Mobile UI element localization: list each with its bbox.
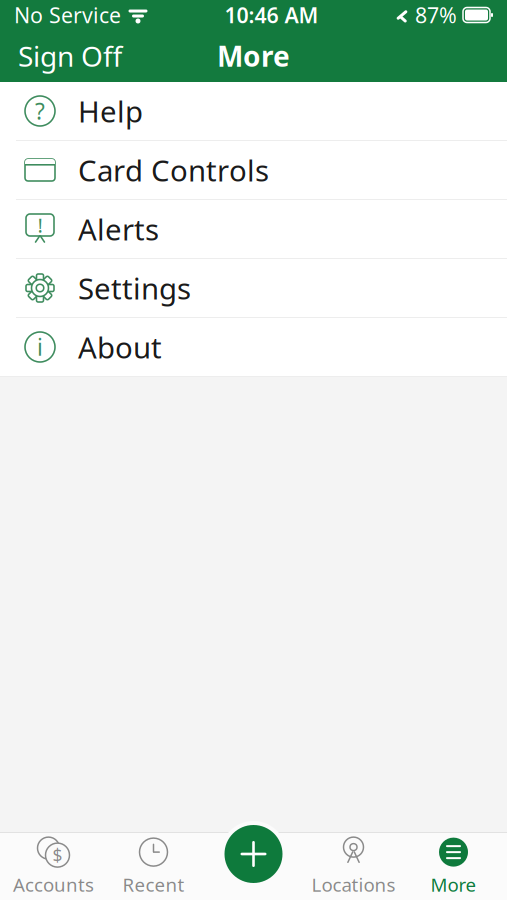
staticText: About	[78, 327, 162, 366]
button[interactable]: More	[403, 833, 503, 899]
button[interactable]: Sign Off	[0, 32, 140, 80]
staticText: Sign Off	[18, 37, 122, 75]
button[interactable]: $	[3, 833, 103, 899]
staticText: Card Controls	[78, 150, 269, 189]
staticText: 87%	[415, 1, 457, 29]
staticText: More	[430, 872, 476, 897]
button[interactable]: Locations	[303, 833, 403, 899]
staticText: Recent	[122, 872, 184, 897]
button[interactable]: Settings	[0, 259, 507, 318]
staticText: Locations	[311, 872, 395, 897]
button[interactable]: !	[0, 200, 507, 259]
staticText: No Service	[14, 1, 121, 29]
staticText: Alerts	[78, 209, 159, 248]
button[interactable]: Card Controls	[0, 141, 507, 200]
staticText: Help	[78, 91, 143, 130]
staticText: i	[37, 332, 43, 362]
button[interactable]: Recent	[103, 833, 203, 899]
staticText: ?	[35, 96, 45, 126]
staticText: $	[52, 844, 62, 867]
button[interactable]: New transaction	[218, 819, 288, 889]
staticText: !	[37, 212, 42, 238]
button[interactable]: i	[0, 318, 507, 377]
staticText: Settings	[78, 268, 191, 307]
staticText: Accounts	[13, 872, 94, 897]
staticText: More	[217, 37, 290, 75]
staticText: 10:46 AM	[224, 1, 318, 29]
button[interactable]: ?	[0, 82, 507, 141]
